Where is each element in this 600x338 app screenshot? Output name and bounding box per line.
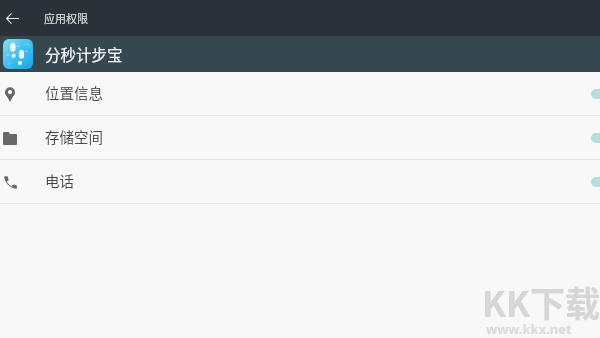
staticText: www.kkx.net bbox=[486, 320, 572, 338]
staticText: 应用权限 bbox=[44, 10, 88, 26]
button[interactable]: 存储空间 bbox=[0, 116, 600, 160]
staticText: 位置信息 bbox=[45, 82, 103, 103]
button[interactable]: 电话 bbox=[0, 160, 600, 204]
staticText: KK下载 bbox=[482, 276, 600, 327]
button[interactable]: 位置信息 bbox=[0, 72, 600, 116]
staticText: 分秒计步宝 bbox=[45, 43, 123, 65]
staticText: 电话 bbox=[45, 170, 74, 191]
staticText: 存储空间 bbox=[45, 126, 103, 147]
button[interactable]: 分秒计步宝 bbox=[0, 36, 600, 72]
button[interactable]: Back bbox=[0, 0, 24, 36]
